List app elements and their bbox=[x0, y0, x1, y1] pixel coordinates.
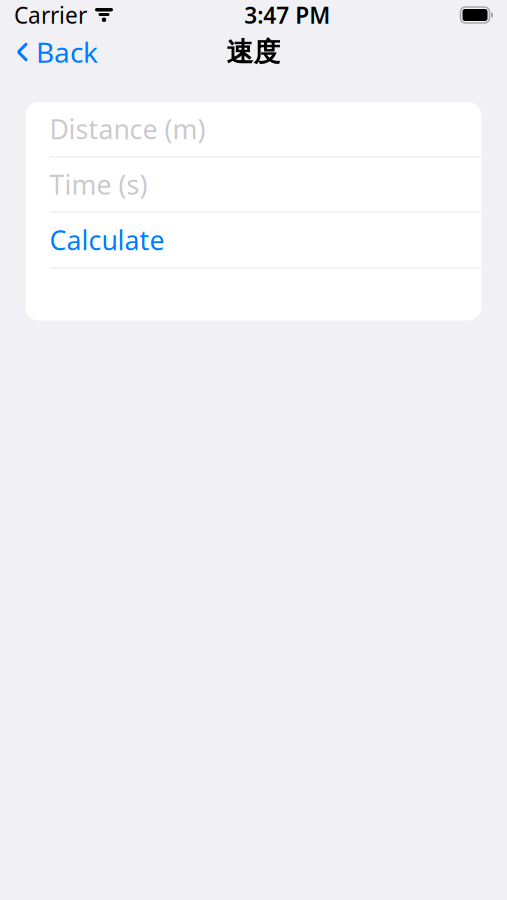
button[interactable]: Time (s) bbox=[25, 157, 481, 211]
button[interactable]: Back bbox=[0, 30, 108, 74]
staticText: Carrier bbox=[14, 0, 87, 30]
staticText: 3:47 PM bbox=[244, 0, 330, 30]
staticText: Distance (m) bbox=[49, 111, 205, 147]
staticText: Time (s) bbox=[49, 167, 147, 202]
staticText: Calculate bbox=[49, 222, 164, 258]
staticText: 速度 bbox=[226, 36, 280, 68]
button[interactable]: Distance (m) bbox=[25, 102, 481, 156]
staticText: Back bbox=[36, 33, 98, 71]
button[interactable]: Calculate bbox=[25, 213, 481, 267]
